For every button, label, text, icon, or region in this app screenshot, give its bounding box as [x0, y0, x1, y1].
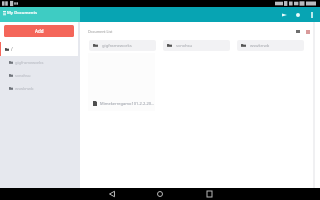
- button[interactable]: wswknwb: [0, 82, 80, 95]
- staticText: wswknwb: [250, 43, 270, 49]
- staticText: My Documents: [7, 10, 38, 16]
- button[interactable]: gigframeworks: [89, 40, 156, 51]
- staticText: gigframeworks: [15, 60, 44, 65]
- staticText: /: [11, 46, 13, 52]
- button[interactable]: Mimekerregamo101-2.2-2013.: [88, 53, 155, 111]
- button[interactable]: More options: [305, 7, 319, 22]
- button[interactable]: Upload: [291, 7, 305, 22]
- button[interactable]: wswknwb: [237, 40, 304, 51]
- staticText: Add: [35, 28, 44, 34]
- staticText: svnxhsu: [176, 43, 193, 49]
- staticText: Document List: [88, 29, 113, 34]
- staticText: svnxhsu: [15, 73, 31, 78]
- button[interactable]: My Documents: [0, 7, 80, 22]
- staticText: wswknwb: [15, 86, 34, 91]
- button[interactable]: /: [0, 42, 78, 56]
- button[interactable]: gigframeworks: [0, 56, 80, 69]
- button[interactable]: Recent apps: [193, 188, 225, 200]
- button[interactable]: Grid view: [293, 28, 302, 35]
- button[interactable]: Home: [144, 188, 176, 200]
- button[interactable]: Add: [4, 25, 74, 37]
- staticText: Mimekerregamo101-2.2-2013.: [100, 101, 155, 106]
- button[interactable]: Share: [277, 7, 291, 22]
- button[interactable]: Back: [96, 188, 128, 200]
- staticText: gigframeworks: [102, 43, 132, 49]
- button[interactable]: svnxhsu: [163, 40, 230, 51]
- button[interactable]: Sort: [303, 28, 312, 35]
- button[interactable]: svnxhsu: [0, 69, 80, 82]
